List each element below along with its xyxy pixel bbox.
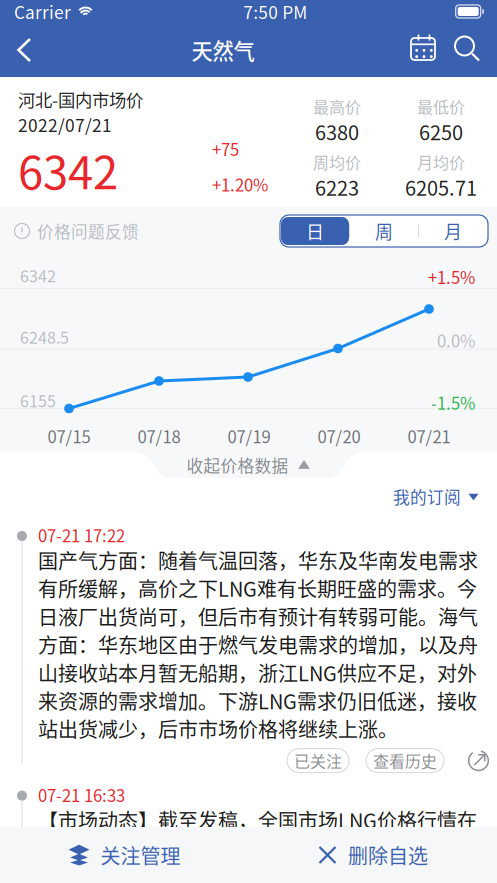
staticText: 6223	[315, 173, 359, 201]
button[interactable]: 日	[281, 217, 349, 245]
staticText: -1.5%	[431, 391, 475, 414]
staticText: 07/19	[227, 424, 270, 448]
staticText: 天然气	[191, 35, 254, 65]
staticText: 我的订阅	[393, 485, 461, 508]
staticText: Carrier	[14, 0, 71, 24]
staticText: +1.20%	[212, 172, 268, 196]
staticText: 6380	[315, 117, 359, 146]
staticText: 6250	[419, 117, 463, 146]
button[interactable]: 价格问题反馈	[0, 213, 139, 249]
staticText: 07/20	[317, 424, 360, 448]
staticText: 2022/07/21	[18, 112, 112, 137]
staticText: 国产气方面：随着气温回落，华东及华南发电需求有所缓解，高价之下LNG难有长期旺盛…	[38, 546, 478, 743]
staticText: 价格问题反馈	[37, 219, 139, 243]
staticText: 07-21 16:33	[38, 783, 125, 806]
staticText: 最低价	[417, 95, 465, 117]
staticText: 6342	[18, 138, 118, 201]
button[interactable]: Back	[0, 23, 45, 77]
staticText: +75	[212, 137, 239, 160]
staticText: 7:50 PM	[243, 0, 307, 24]
staticText: 6248.5	[20, 325, 69, 348]
button[interactable]: 查看历史	[366, 749, 444, 773]
button[interactable]: 关注管理	[0, 827, 248, 883]
staticText: 月	[444, 218, 462, 244]
staticText: 周	[375, 218, 393, 244]
staticText: 已关注	[294, 749, 342, 772]
staticText: 河北-国内市场价	[18, 87, 143, 111]
staticText: 07/18	[137, 424, 180, 448]
staticText: 查看历史	[373, 749, 437, 772]
staticText: 周均价	[313, 151, 361, 173]
staticText: 日	[306, 218, 324, 244]
staticText: 07/21	[407, 424, 450, 448]
staticText: 6342	[20, 264, 56, 286]
staticText: 删除自选	[348, 841, 428, 869]
button[interactable]: Share	[444, 749, 490, 772]
staticText: 月均价	[417, 151, 465, 173]
staticText: 关注管理	[100, 841, 180, 869]
button[interactable]: Search	[447, 23, 497, 77]
button[interactable]: 收起价格数据	[166, 452, 330, 478]
button[interactable]: 删除自选	[248, 827, 497, 883]
button[interactable]: 周	[350, 217, 418, 245]
staticText: 收起价格数据	[186, 453, 288, 477]
button[interactable]: Calendar	[401, 23, 447, 77]
button[interactable]: 月	[419, 217, 487, 245]
staticText: 6155	[20, 389, 56, 411]
button[interactable]: 已关注	[287, 749, 349, 773]
staticText: 0.0%	[437, 328, 475, 352]
staticText: 6205.71	[405, 173, 477, 201]
button[interactable]: 我的订阅	[393, 477, 497, 516]
staticText: 07/15	[47, 424, 90, 448]
staticText: +1.5%	[428, 265, 475, 288]
staticText: 【市场动态】截至发稿，全国市场LNG价格行情在6524.19元/吨，涨106.2…	[38, 806, 487, 862]
staticText: 最高价	[313, 95, 361, 117]
staticText: 07-21 17:22	[38, 523, 125, 547]
